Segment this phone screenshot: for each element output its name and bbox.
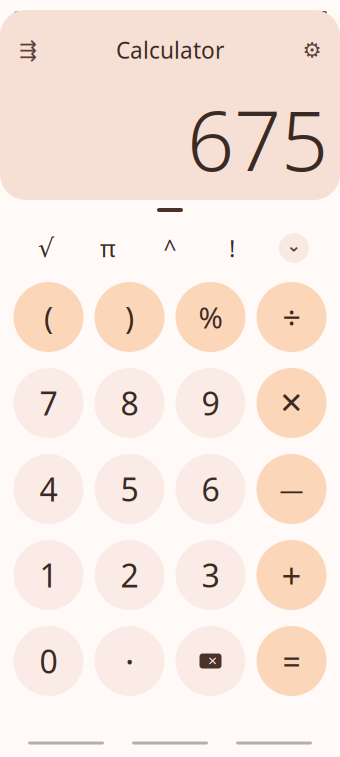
button[interactable]: 4 xyxy=(13,454,83,524)
staticText: 9 xyxy=(201,382,219,424)
button[interactable]: + xyxy=(256,540,326,610)
staticText: π xyxy=(100,232,116,264)
staticText: Calculator xyxy=(116,35,224,65)
button[interactable]: · xyxy=(94,626,164,696)
staticText: ! xyxy=(229,232,235,264)
staticText: 2 xyxy=(120,554,138,596)
staticText: 6 xyxy=(201,468,219,510)
button[interactable]: History xyxy=(10,32,46,68)
staticText: √ xyxy=(38,234,54,262)
staticText: ⚙ xyxy=(302,38,321,62)
staticText: ÷ xyxy=(282,296,300,338)
staticText: 7 xyxy=(39,382,57,424)
staticText: 675 xyxy=(187,84,328,194)
staticText: ( xyxy=(44,297,53,337)
staticText: % xyxy=(198,297,222,336)
button[interactable]: More functions xyxy=(263,220,325,276)
staticText: ) xyxy=(125,297,134,337)
staticText: 3 xyxy=(201,554,219,596)
button[interactable]: 5 xyxy=(94,454,164,524)
button[interactable]: = xyxy=(256,626,326,696)
button[interactable]: 2 xyxy=(94,540,164,610)
staticText: + xyxy=(281,552,301,598)
button[interactable]: — xyxy=(256,454,326,524)
button[interactable]: ! xyxy=(201,220,263,276)
staticText: ✕ xyxy=(279,386,304,420)
button[interactable]: Settings xyxy=(294,32,330,68)
button[interactable]: ✕ xyxy=(256,368,326,438)
button[interactable]: π xyxy=(77,220,139,276)
staticText: 5 xyxy=(120,468,138,510)
button[interactable]: 7 xyxy=(13,368,83,438)
button[interactable]: 3 xyxy=(175,540,245,610)
staticText: ^ xyxy=(163,233,176,263)
button[interactable]: 8 xyxy=(94,368,164,438)
button[interactable]: ^ xyxy=(139,220,201,276)
staticText: ✕ xyxy=(207,654,217,668)
staticText: 0 xyxy=(39,640,57,682)
staticText: — xyxy=(279,473,303,505)
staticText: 4 xyxy=(39,468,57,510)
button[interactable]: ÷ xyxy=(256,282,326,352)
staticText: 2:15 xyxy=(13,6,41,24)
staticText: 8 xyxy=(120,382,138,424)
staticText: ▂▄ xyxy=(276,8,294,22)
button[interactable]: 1 xyxy=(13,540,83,610)
staticText: ⌄ xyxy=(286,236,301,255)
staticText: · xyxy=(125,638,134,684)
staticText: 1 xyxy=(39,554,57,596)
button[interactable]: √ xyxy=(15,220,77,276)
staticText: = xyxy=(282,640,300,682)
button[interactable]: ) xyxy=(94,282,164,352)
staticText: ⇶ xyxy=(19,38,37,62)
staticText: ▼ xyxy=(298,9,306,21)
button[interactable]: 6 xyxy=(175,454,245,524)
button[interactable]: Delete xyxy=(175,626,245,696)
button[interactable]: % xyxy=(175,282,245,352)
button[interactable]: 9 xyxy=(175,368,245,438)
button[interactable]: 0 xyxy=(13,626,83,696)
button[interactable]: ( xyxy=(13,282,83,352)
